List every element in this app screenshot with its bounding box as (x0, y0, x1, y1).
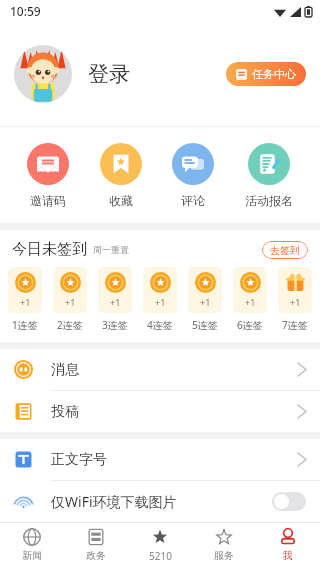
button[interactable]: 仅WiFi环境下载图片 (0, 481, 320, 522)
button[interactable]: 去签到 (262, 241, 308, 259)
staticText: 6连签 (237, 318, 263, 332)
staticText: 政务 (86, 549, 106, 562)
button[interactable]: 邀请码 (23, 143, 73, 208)
button[interactable]: 投稿 (0, 391, 320, 432)
button[interactable]: 政务 (64, 523, 128, 567)
staticText: 消息 (51, 361, 79, 379)
staticText: 5连签 (192, 318, 218, 332)
button[interactable]: +1 (143, 267, 177, 332)
button[interactable]: +1 (188, 267, 222, 332)
button[interactable]: 服务 (192, 523, 256, 567)
staticText: +1 (155, 296, 166, 308)
staticText: 服务 (214, 549, 234, 562)
button[interactable]: +1 (98, 267, 132, 332)
staticText: 1连签 (12, 318, 38, 332)
staticText: 5210 (149, 549, 172, 563)
button[interactable]: +1 (233, 267, 267, 332)
button[interactable]: +1 (278, 267, 312, 332)
staticText: 收藏 (109, 193, 133, 208)
button[interactable]: +1 (8, 267, 42, 332)
staticText: +1 (65, 296, 76, 308)
staticText: 3连签 (102, 318, 128, 332)
button[interactable]: 正文字号 (0, 439, 320, 481)
staticText: 新闻 (22, 549, 42, 562)
button[interactable]: 消息 (0, 349, 320, 391)
staticText: +1 (20, 296, 31, 308)
staticText: 10:59 (10, 3, 41, 19)
staticText: +1 (110, 296, 121, 308)
button[interactable]: 5210 (128, 523, 192, 567)
button[interactable]: 新闻 (0, 523, 64, 567)
staticText: 邀请码 (30, 193, 66, 208)
button[interactable]: +1 (53, 267, 87, 332)
staticText: +1 (200, 296, 211, 308)
staticText: 今日未签到 (12, 240, 87, 259)
staticText: 正文字号 (51, 451, 107, 469)
staticText: 仅WiFi环境下载图片 (51, 492, 177, 511)
button[interactable]: 活动报名 (241, 143, 297, 208)
button[interactable]: 评论 (168, 143, 218, 208)
staticText: 评论 (181, 193, 205, 208)
button[interactable]: Avatar (14, 45, 72, 103)
staticText: 2连签 (57, 318, 83, 332)
staticText: 我 (283, 549, 293, 562)
staticText: 4连签 (147, 318, 173, 332)
button[interactable]: 我 (256, 523, 320, 567)
staticText: 周一重置 (93, 244, 129, 255)
staticText: +1 (245, 296, 256, 308)
button[interactable]: 任务中心 (226, 62, 306, 86)
staticText: 去签到 (270, 244, 300, 257)
staticText: 任务中心 (252, 67, 296, 81)
button[interactable]: 收藏 (96, 143, 146, 208)
staticText: 投稿 (51, 403, 79, 421)
staticText: 活动报名 (245, 193, 293, 208)
staticText: +1 (290, 296, 301, 308)
button[interactable]: 登录 (88, 61, 130, 87)
staticText: 7连签 (282, 318, 308, 332)
